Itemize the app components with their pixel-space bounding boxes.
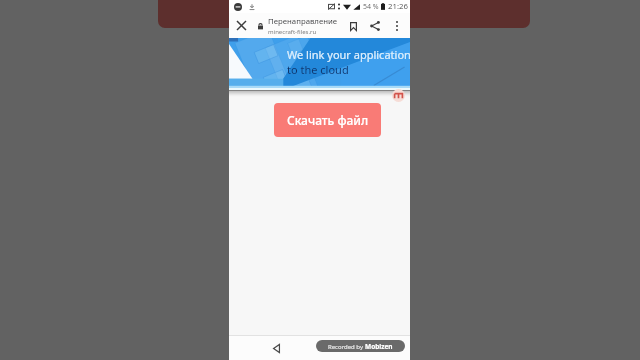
staticText: Recorded by <box>328 343 365 351</box>
button[interactable]: Скачать файл <box>274 103 381 137</box>
button[interactable]: Bookmark <box>342 15 364 37</box>
button[interactable]: Share <box>364 15 386 37</box>
staticText: 21:26 <box>388 1 408 12</box>
button[interactable]: Close <box>229 13 254 38</box>
button[interactable]: More options <box>386 15 408 37</box>
button[interactable]: We link your application <box>229 38 410 88</box>
staticText: to the cloud <box>287 62 349 77</box>
staticText: minecraft-files.ru <box>268 28 317 36</box>
staticText: We link your application <box>287 47 410 62</box>
staticText: Перенаправление <box>268 16 338 27</box>
button[interactable]: Перенаправление <box>268 13 342 38</box>
staticText: Mobizen <box>365 342 393 351</box>
button[interactable]: Back <box>259 336 293 360</box>
staticText: 54 % <box>363 2 379 12</box>
staticText: Скачать файл <box>287 112 369 128</box>
